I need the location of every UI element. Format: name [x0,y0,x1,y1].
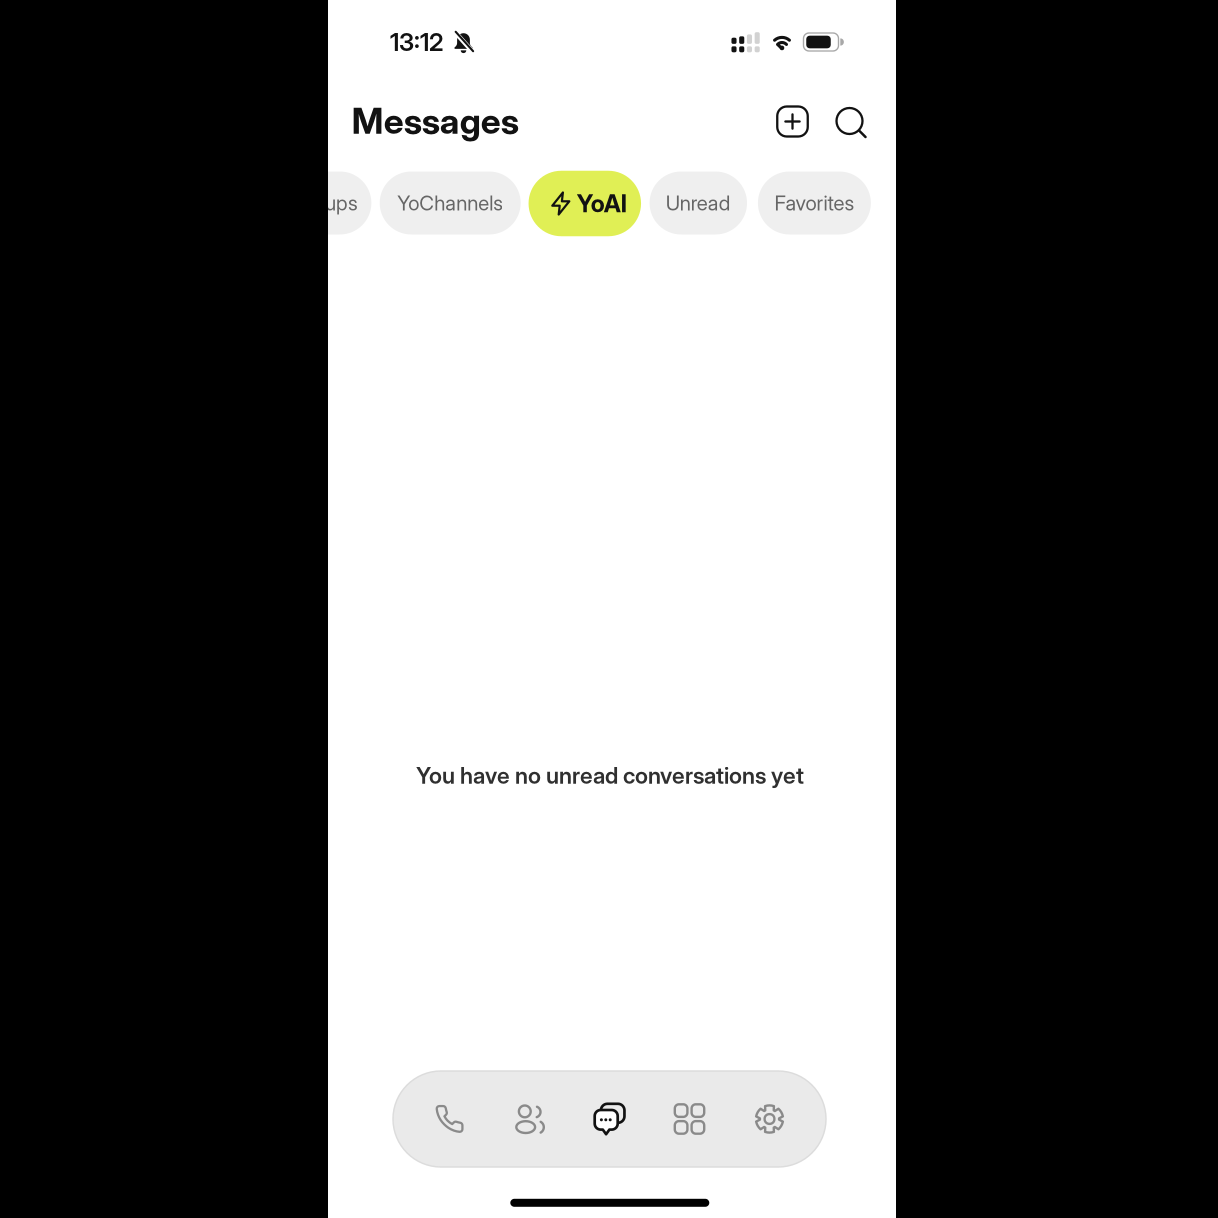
button[interactable]: Apps [659,1084,719,1154]
button[interactable]: Settings [739,1084,799,1154]
button[interactable]: New chat [770,101,814,141]
button[interactable]: Messages [579,1084,639,1154]
button[interactable]: Unread [649,171,747,234]
button[interactable]: Calls [419,1084,479,1154]
staticText: YoAI [577,189,627,218]
button[interactable]: Search [831,103,871,143]
button[interactable]: YoChannels [380,171,521,234]
staticText: Messages [352,99,519,142]
button[interactable]: YoAI [528,171,641,236]
staticText: Favorites [774,191,854,215]
staticText: You have no unread conversations yet [416,762,804,789]
staticText: Groups [293,191,358,215]
button[interactable]: Contacts [499,1084,559,1154]
staticText: Unread [666,191,731,215]
button[interactable]: Groups [231,171,371,234]
staticText: YoChannels [397,191,503,215]
button[interactable]: Favorites [758,171,871,234]
staticText: 13:12 [390,27,443,57]
